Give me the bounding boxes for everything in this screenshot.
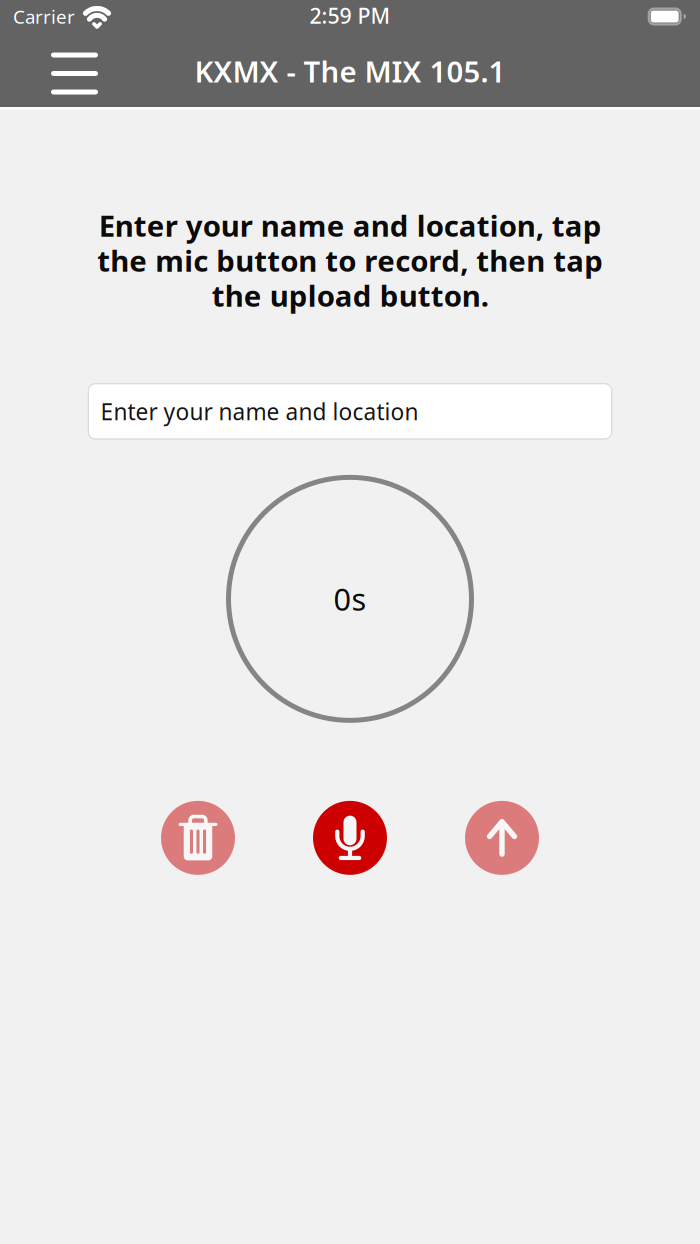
button[interactable]: Menu <box>0 38 122 106</box>
staticText: Carrier <box>13 4 75 29</box>
staticText: KXMX - The MIX 105.1 <box>194 51 505 90</box>
button[interactable]: Record <box>313 801 387 875</box>
staticText: 2:59 PM <box>309 1 390 30</box>
staticText: Enter your name and location, tap the mi… <box>97 206 603 315</box>
button[interactable]: Upload recording <box>465 801 539 875</box>
staticText: Enter your name and location <box>100 396 418 426</box>
button[interactable]: Delete recording <box>161 801 235 875</box>
staticText: 0s <box>333 578 366 619</box>
